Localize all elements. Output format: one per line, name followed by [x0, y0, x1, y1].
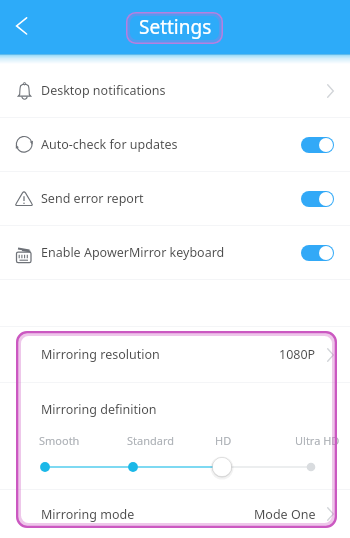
button[interactable]: Desktop notifications: [0, 64, 350, 117]
staticText: Settings: [139, 14, 212, 40]
staticText: Mirroring resolution: [41, 346, 160, 363]
button[interactable]: Back: [0, 0, 44, 54]
staticText: Smooth: [39, 433, 80, 448]
button[interactable]: Toggle: [301, 245, 334, 261]
staticText: Mirroring mode: [41, 506, 135, 523]
staticText: Mirroring definition: [41, 401, 157, 418]
button[interactable]: Mirroring mode: [0, 490, 350, 538]
button[interactable]: Toggle: [301, 137, 334, 153]
staticText: 1080P: [279, 346, 316, 363]
button[interactable]: Mirroring resolution: [0, 327, 350, 382]
staticText: HD: [215, 433, 232, 448]
staticText: Ultra HD: [295, 433, 340, 448]
button[interactable]: Send error report: [0, 172, 350, 225]
staticText: Standard: [127, 433, 175, 448]
staticText: Desktop notifications: [41, 82, 166, 99]
staticText: Mode One: [254, 506, 316, 523]
staticText: Send error report: [41, 190, 144, 207]
button[interactable]: Auto-check for updates: [0, 118, 350, 171]
staticText: Enable ApowerMirror keyboard: [41, 244, 225, 261]
button[interactable]: Toggle: [301, 191, 334, 207]
staticText: Auto-check for updates: [41, 136, 178, 153]
button[interactable]: Enable ApowerMirror keyboard: [0, 226, 350, 279]
